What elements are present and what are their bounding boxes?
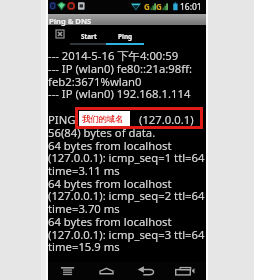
staticText: (127.0.0.1): icmp_seq=3 ttl=64 <box>48 227 205 242</box>
staticText: 56(84) bytes of data. <box>48 125 156 140</box>
staticText: (127.0.0.1): icmp_seq=2 ttl=64 <box>48 188 205 203</box>
staticText: PING <box>48 112 76 127</box>
button[interactable]: Menu <box>48 262 87 280</box>
button[interactable]: Start <box>70 25 107 47</box>
staticText: 64 bytes from localhost <box>48 138 172 153</box>
button[interactable]: Ping <box>106 25 144 47</box>
staticText: 64 bytes from localhost <box>48 214 172 229</box>
staticText: time=3.11 ms <box>48 163 120 178</box>
staticText: (127.0.0.1) <box>139 112 194 127</box>
staticText: 16:01 <box>180 1 202 13</box>
button[interactable]: Recent apps <box>166 262 206 280</box>
staticText: time=3.70 ms <box>48 201 120 216</box>
staticText: Start <box>81 32 97 41</box>
staticText: --- IP (wlan0) fe80::21a:98ff: <box>48 61 192 76</box>
staticText: G <box>144 1 150 12</box>
staticText: time=15.9 ms <box>48 239 120 254</box>
button[interactable]: App icon <box>56 30 64 38</box>
button[interactable]: Back <box>126 262 166 280</box>
staticText: --- 2014-5-16 下午4:00:59 <box>48 48 179 63</box>
staticText: feb2:3671%wlan0 <box>48 74 142 89</box>
staticText: 64 bytes from localhost <box>48 176 172 191</box>
staticText: G <box>156 1 162 12</box>
staticText: Ping & DNS <box>49 16 92 26</box>
staticText: (127.0.0.1): icmp_seq=1 ttl=64 <box>48 150 205 165</box>
staticText: --- IP (wlan0) 192.168.1.114 <box>48 86 191 101</box>
staticText: 我们的域名 <box>82 114 123 124</box>
button[interactable]: Home <box>87 262 126 280</box>
staticText: Ping <box>118 32 133 41</box>
